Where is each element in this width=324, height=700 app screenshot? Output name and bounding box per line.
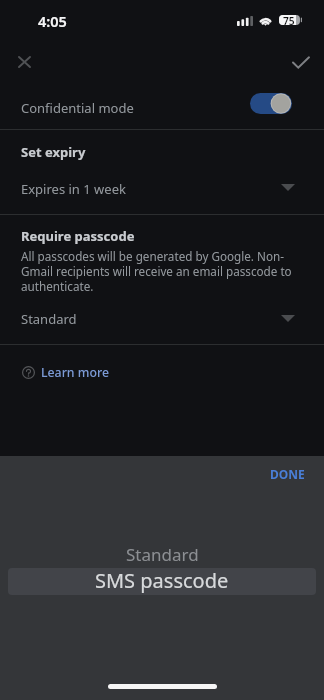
staticText: SMS passcode	[95, 568, 229, 594]
staticText: Require passcode	[21, 227, 135, 245]
staticText: All passcodes will be generated by Googl…	[21, 248, 304, 294]
button[interactable]: Close	[4, 42, 44, 82]
staticText: 4:05	[38, 11, 67, 31]
staticText: Standard	[21, 310, 77, 328]
button[interactable]: Confidential mode	[0, 86, 324, 129]
staticText: DONE	[270, 466, 305, 482]
staticText: Expires in 1 week	[21, 180, 126, 198]
staticText: Standard	[126, 543, 199, 566]
button[interactable]: Expires in 1 week	[0, 174, 324, 208]
staticText: Learn more	[41, 364, 109, 381]
staticText: Confidential mode	[21, 99, 134, 117]
button[interactable]: Learn more	[0, 352, 324, 392]
button[interactable]: Save	[281, 42, 321, 82]
button[interactable]: Standard	[0, 540, 324, 568]
button[interactable]: Confidential mode	[250, 93, 292, 114]
button[interactable]: Standard	[0, 305, 324, 339]
button[interactable]: DONE	[258, 456, 316, 492]
staticText: Set expiry	[21, 143, 86, 161]
button[interactable]: SMS passcode	[8, 568, 316, 595]
staticText: 75	[283, 14, 295, 28]
